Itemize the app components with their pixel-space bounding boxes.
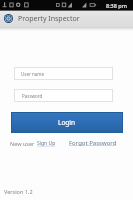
staticText: Version 1.2 bbox=[4, 188, 33, 195]
button[interactable]: Sign Up bbox=[37, 140, 56, 147]
staticText: Property Inspector bbox=[18, 14, 80, 24]
staticText: User name bbox=[21, 71, 45, 77]
staticText: Sign Up bbox=[37, 140, 56, 147]
staticText: 8:38 pm bbox=[106, 2, 127, 9]
staticText: Login bbox=[58, 118, 76, 127]
staticText: Forgot Password bbox=[69, 139, 117, 147]
button[interactable]: Forgot Password bbox=[69, 139, 117, 147]
other: Property Inspector logo bbox=[4, 14, 13, 23]
staticText: New user bbox=[10, 140, 35, 147]
button[interactable]: Password bbox=[14, 89, 113, 102]
button[interactable]: User name bbox=[14, 67, 113, 80]
button[interactable]: Login bbox=[11, 112, 123, 133]
staticText: Password bbox=[22, 93, 43, 99]
